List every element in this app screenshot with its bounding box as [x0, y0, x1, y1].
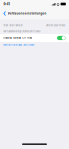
staticText: Version 2024011500: [46, 24, 65, 27]
staticText: 9:41: [3, 2, 9, 6]
staticText: Trust Store Version: [3, 24, 22, 27]
button[interactable]: Weitere Infos über Zertifikate: [0, 42, 69, 46]
staticText: Vertrauenseinstellungen: [8, 12, 47, 15]
staticText: Vertrauenswürdige Stammzertifikate: [3, 30, 40, 33]
staticText: Weitere Infos über Zertifikate: [3, 44, 34, 46]
button[interactable]: Zurück: [0, 8, 8, 19]
staticText: AddTrust External CA Root: [3, 36, 32, 39]
button[interactable]: AddTrust External CA Root: [0, 34, 69, 42]
